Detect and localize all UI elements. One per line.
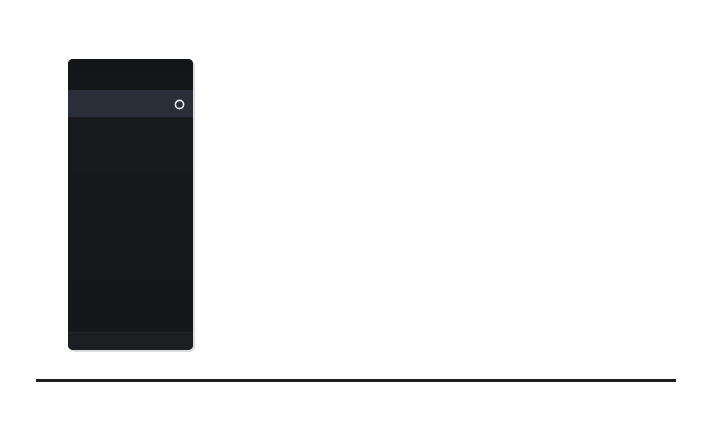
button[interactable]: Account <box>171 96 187 112</box>
button[interactable] <box>68 333 193 350</box>
